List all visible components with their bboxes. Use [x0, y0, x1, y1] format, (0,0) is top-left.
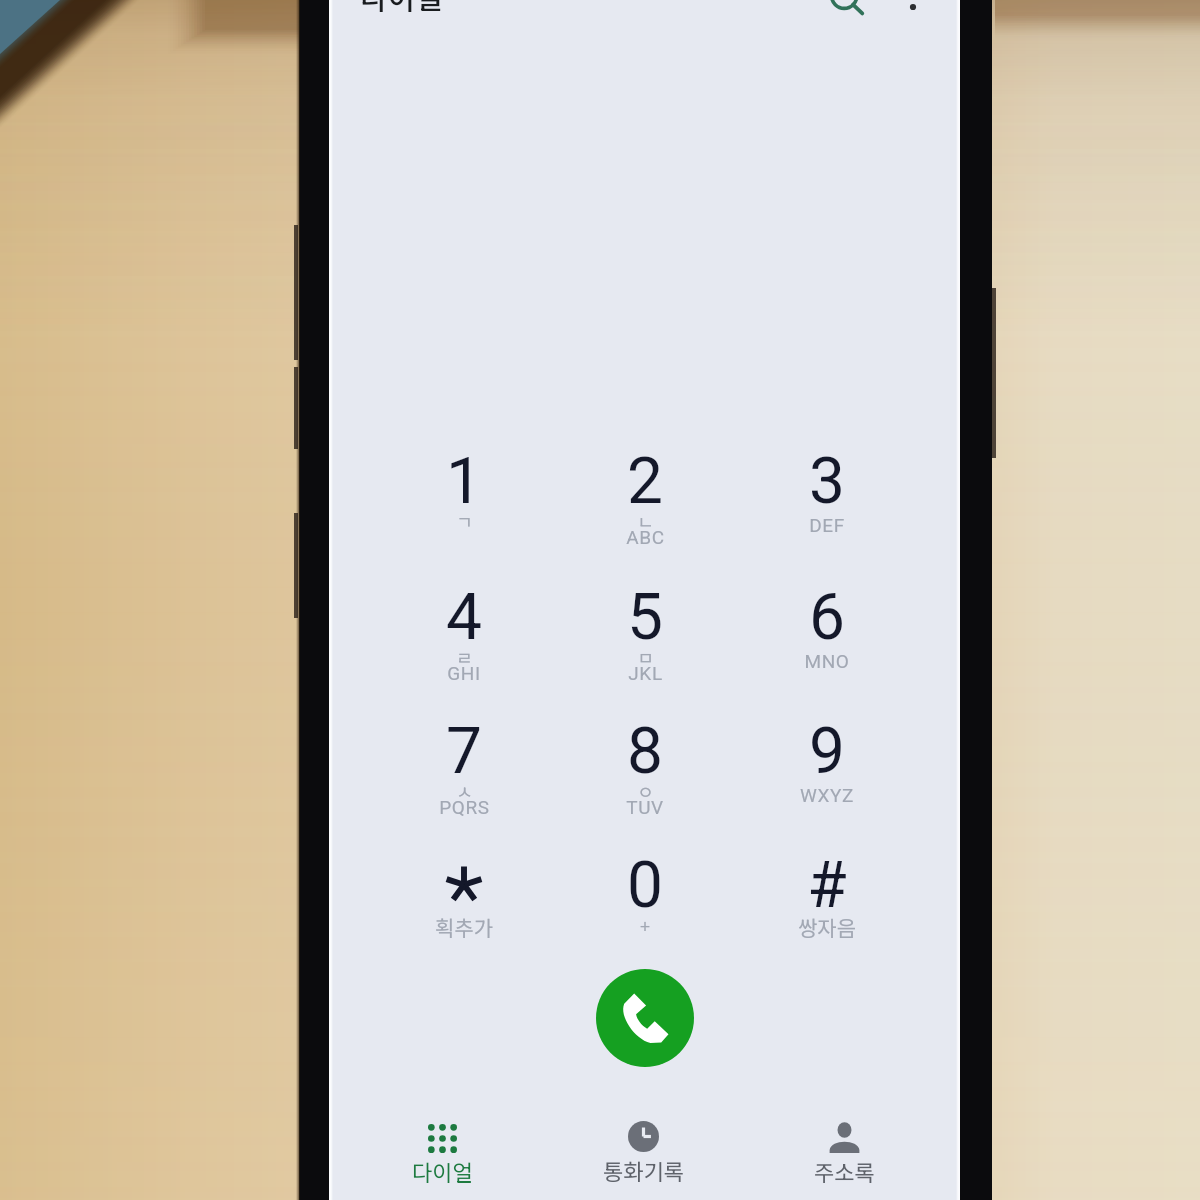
- staticText: ㅇ: [637, 778, 654, 804]
- button[interactable]: 1: [379, 444, 549, 564]
- staticText: JKL: [628, 662, 663, 684]
- staticText: GHI: [447, 662, 481, 684]
- button[interactable]: 3: [742, 444, 912, 564]
- staticText: 쌍자음: [798, 912, 856, 942]
- staticText: 다이얼: [412, 1155, 473, 1187]
- staticText: DEF: [809, 514, 845, 536]
- button[interactable]: 7: [379, 714, 549, 834]
- staticText: 주소록: [814, 1155, 875, 1187]
- button[interactable]: Search: [822, 0, 874, 26]
- staticText: ㅅ: [456, 778, 473, 804]
- staticText: 4: [446, 580, 482, 655]
- button[interactable]: 주소록: [749, 1096, 939, 1200]
- staticText: 6: [809, 580, 845, 655]
- staticText: 획추가: [435, 912, 493, 942]
- staticText: 3: [809, 444, 845, 519]
- staticText: PQRS: [439, 796, 490, 818]
- staticText: MNO: [804, 650, 850, 672]
- staticText: 0: [627, 848, 663, 923]
- staticText: TUV: [626, 796, 664, 818]
- staticText: #: [807, 848, 847, 923]
- button[interactable]: 6: [742, 580, 912, 700]
- staticText: 9: [809, 714, 845, 789]
- staticText: 1: [446, 444, 482, 519]
- button[interactable]: Call: [596, 969, 694, 1067]
- staticText: 8: [627, 714, 663, 789]
- button[interactable]: #: [742, 848, 912, 968]
- button[interactable]: 8: [560, 714, 730, 834]
- button[interactable]: 통화기록: [548, 1095, 738, 1199]
- staticText: ABC: [626, 526, 665, 548]
- staticText: 다이얼: [360, 0, 443, 17]
- button[interactable]: More options: [887, 0, 939, 22]
- button[interactable]: 0: [560, 848, 730, 968]
- button[interactable]: 4: [379, 580, 549, 700]
- staticText: ㄱ: [456, 508, 473, 534]
- button[interactable]: 획추가: [379, 848, 549, 968]
- staticText: 5: [627, 580, 663, 655]
- button[interactable]: 2: [560, 444, 730, 564]
- staticText: ㄹ: [456, 644, 473, 670]
- staticText: ㄴ: [637, 508, 654, 534]
- button[interactable]: 9: [742, 714, 912, 834]
- staticText: WXYZ: [800, 784, 854, 806]
- staticText: +: [640, 912, 650, 938]
- staticText: 2: [627, 444, 663, 519]
- staticText: ㅁ: [637, 644, 654, 670]
- staticText: 7: [446, 714, 482, 789]
- button[interactable]: 다이얼: [347, 1098, 537, 1200]
- staticText: 통화기록: [603, 1154, 684, 1186]
- button[interactable]: 5: [560, 580, 730, 700]
